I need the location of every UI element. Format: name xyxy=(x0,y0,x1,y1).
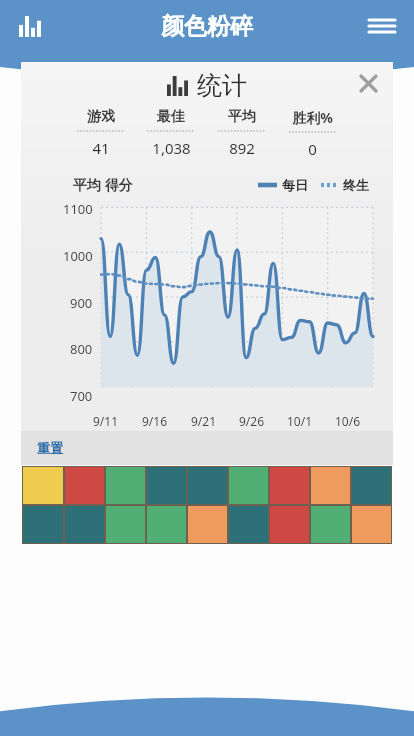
staticText: 每日 xyxy=(282,177,308,193)
staticText: 9/21 xyxy=(191,413,217,429)
staticText: 重置 xyxy=(37,440,63,456)
staticText: 892 xyxy=(229,138,255,158)
staticText: 胜利% xyxy=(292,108,333,127)
staticText: 41 xyxy=(92,138,110,158)
staticText: 900 xyxy=(70,294,93,312)
staticText: 0 xyxy=(308,139,317,159)
staticText: 1100 xyxy=(63,200,93,218)
staticText: 9/11 xyxy=(93,413,119,429)
staticText: 1000 xyxy=(63,247,93,265)
staticText: 10/6 xyxy=(335,413,361,429)
staticText: 颜色粉碎 xyxy=(161,12,253,41)
staticText: 10/1 xyxy=(287,413,313,429)
staticText: 1,038 xyxy=(152,138,191,158)
staticText: 800 xyxy=(70,340,93,358)
button[interactable]: Menu xyxy=(362,6,402,46)
staticText: 统计 xyxy=(197,70,247,101)
button[interactable]: Close xyxy=(353,68,383,98)
staticText: 最佳 xyxy=(157,108,185,126)
staticText: 700 xyxy=(70,387,93,405)
staticText: 9/26 xyxy=(239,413,265,429)
staticText: 9/16 xyxy=(142,413,168,429)
button[interactable]: Statistics xyxy=(10,6,50,46)
staticText: 游戏 xyxy=(87,108,115,126)
staticText: 平均 xyxy=(228,108,256,126)
button[interactable]: 重置 xyxy=(37,440,63,456)
staticText: 平均 得分 xyxy=(73,175,133,194)
staticText: 终生 xyxy=(343,177,369,193)
